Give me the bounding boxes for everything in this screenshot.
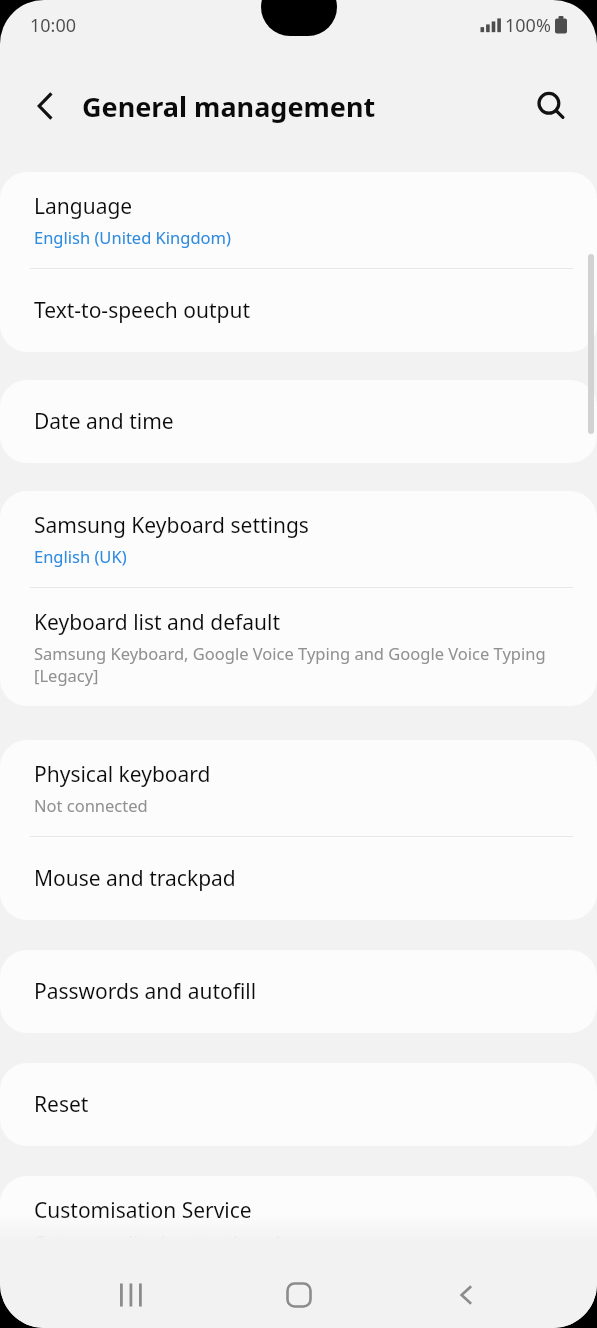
staticText: Customisation Service [34,1196,252,1225]
staticText: Date and time [34,407,174,436]
staticText: Not connected [34,794,148,816]
button[interactable]: Text-to-speech output [0,269,597,352]
staticText: Mouse and trackpad [34,864,236,893]
button[interactable]: Search [527,82,575,130]
staticText: General management [82,88,376,125]
button[interactable]: Physical keyboard [0,740,597,836]
button[interactable]: Back [22,83,68,129]
button[interactable]: Samsung Keyboard settings [0,491,597,587]
button[interactable]: Home [263,1262,335,1328]
button[interactable]: Customisation Service [0,1176,597,1262]
button[interactable]: Date and time [0,380,597,463]
staticText: English (UK) [34,545,127,567]
button[interactable]: Keyboard list and default [0,588,597,706]
button[interactable]: Passwords and autofill [0,950,597,1033]
staticText: Physical keyboard [34,760,211,789]
staticText: Language [34,192,133,221]
staticText: Reset [34,1090,89,1119]
staticText: Keyboard list and default [34,608,280,637]
staticText: 10:00 [30,13,77,38]
staticText: English (United Kingdom) [34,226,231,248]
button[interactable]: Mouse and trackpad [0,837,597,920]
staticText: Samsung Keyboard, Google Voice Typing an… [34,642,567,686]
button[interactable]: Recents [95,1262,167,1328]
staticText: Passwords and autofill [34,977,257,1006]
button[interactable]: Reset [0,1063,597,1146]
staticText: 100% [505,13,551,38]
staticText: Text-to-speech output [34,296,251,325]
staticText: Samsung Keyboard settings [34,511,309,540]
button[interactable]: Language [0,172,597,268]
button[interactable]: Back [430,1262,502,1328]
